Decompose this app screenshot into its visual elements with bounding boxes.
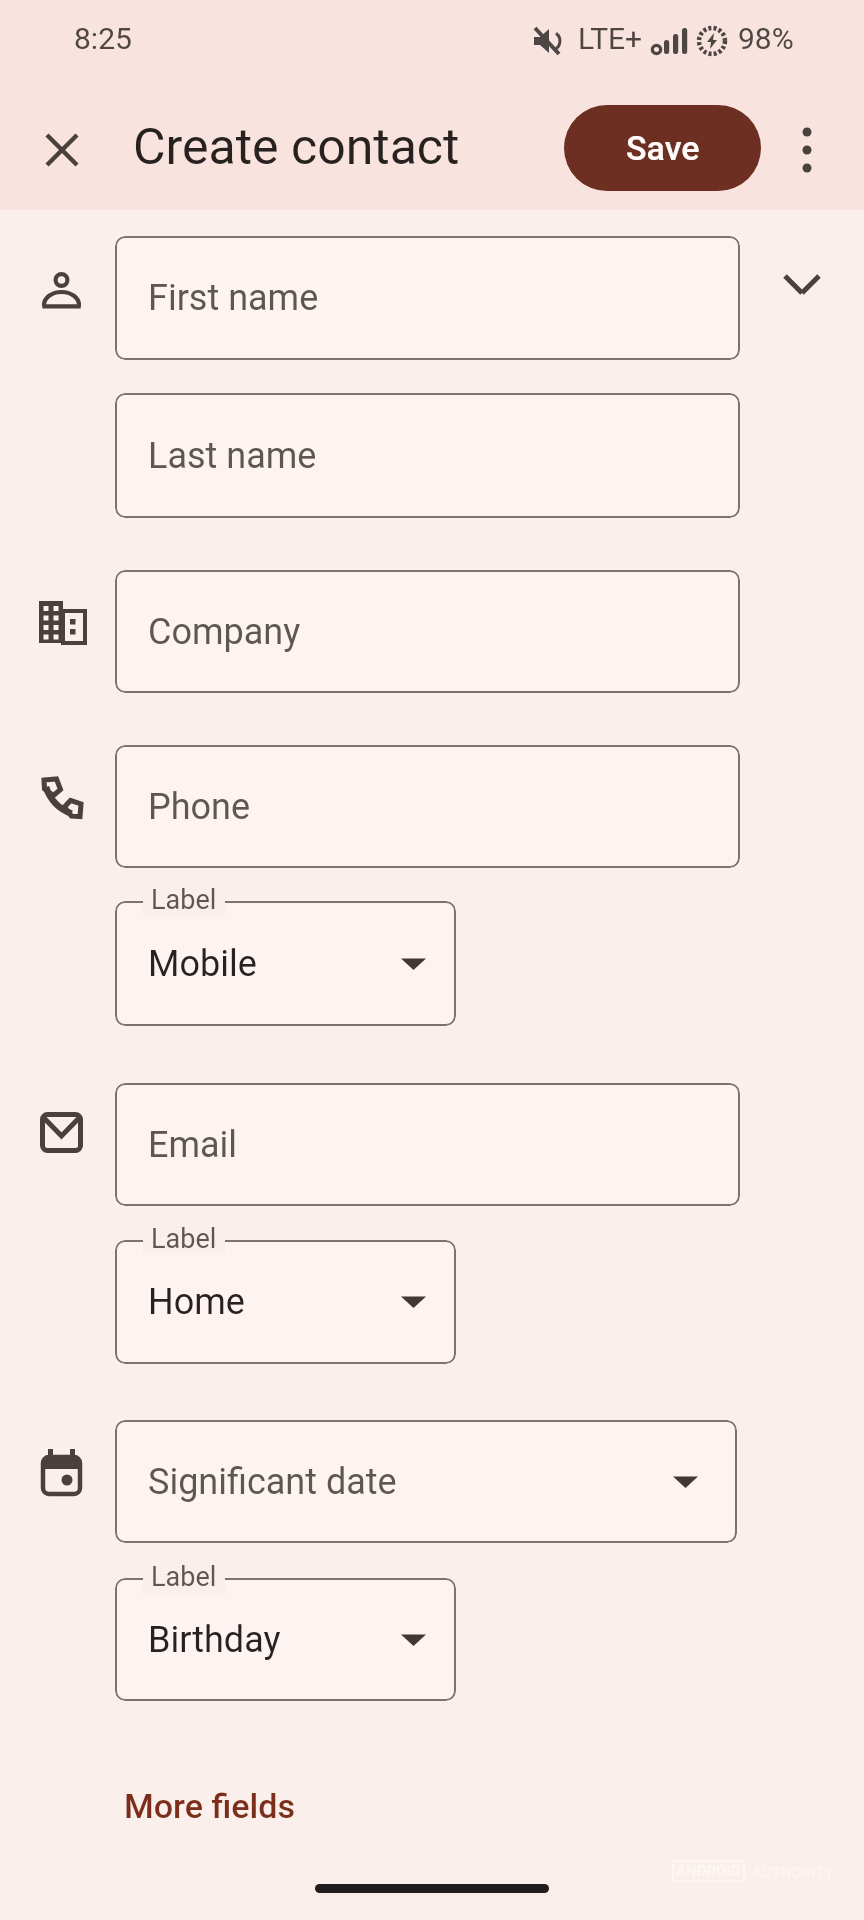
button[interactable]: Phone [115,745,740,868]
button[interactable]: Significant date [115,1420,737,1543]
staticText: Email [148,1124,238,1166]
staticText: Birthday [148,1619,281,1661]
button[interactable]: Email [115,1083,740,1206]
button[interactable]: Company [115,570,740,693]
staticText: Create contact [133,118,460,177]
staticText: Significant date [148,1461,397,1503]
staticText: Last name [148,435,317,477]
staticText: Label [151,1561,217,1593]
staticText: Label [151,1223,217,1255]
button[interactable]: Last name [115,393,740,518]
button[interactable]: Mobile [115,901,456,1026]
staticText: First name [148,277,319,319]
button[interactable]: Birthday [115,1578,456,1701]
staticText: Home [148,1281,245,1323]
button[interactable]: More fields [100,1770,319,1842]
button[interactable] [774,257,830,313]
staticText: Save [626,128,700,168]
staticText: 8:25 [74,21,132,56]
button[interactable] [779,122,835,178]
staticText: More fields [124,1786,295,1826]
staticText: Label [151,884,217,916]
staticText: LTE+ [578,21,643,56]
staticText: 98% [738,21,794,56]
button[interactable]: Save [564,105,761,191]
staticText: Company [148,611,301,653]
staticText: Phone [148,786,251,828]
staticText: Mobile [148,943,257,985]
button[interactable]: First name [115,236,740,360]
button[interactable]: Home [115,1240,456,1364]
staticText: ANDROID [676,1862,741,1880]
button[interactable] [34,122,90,178]
